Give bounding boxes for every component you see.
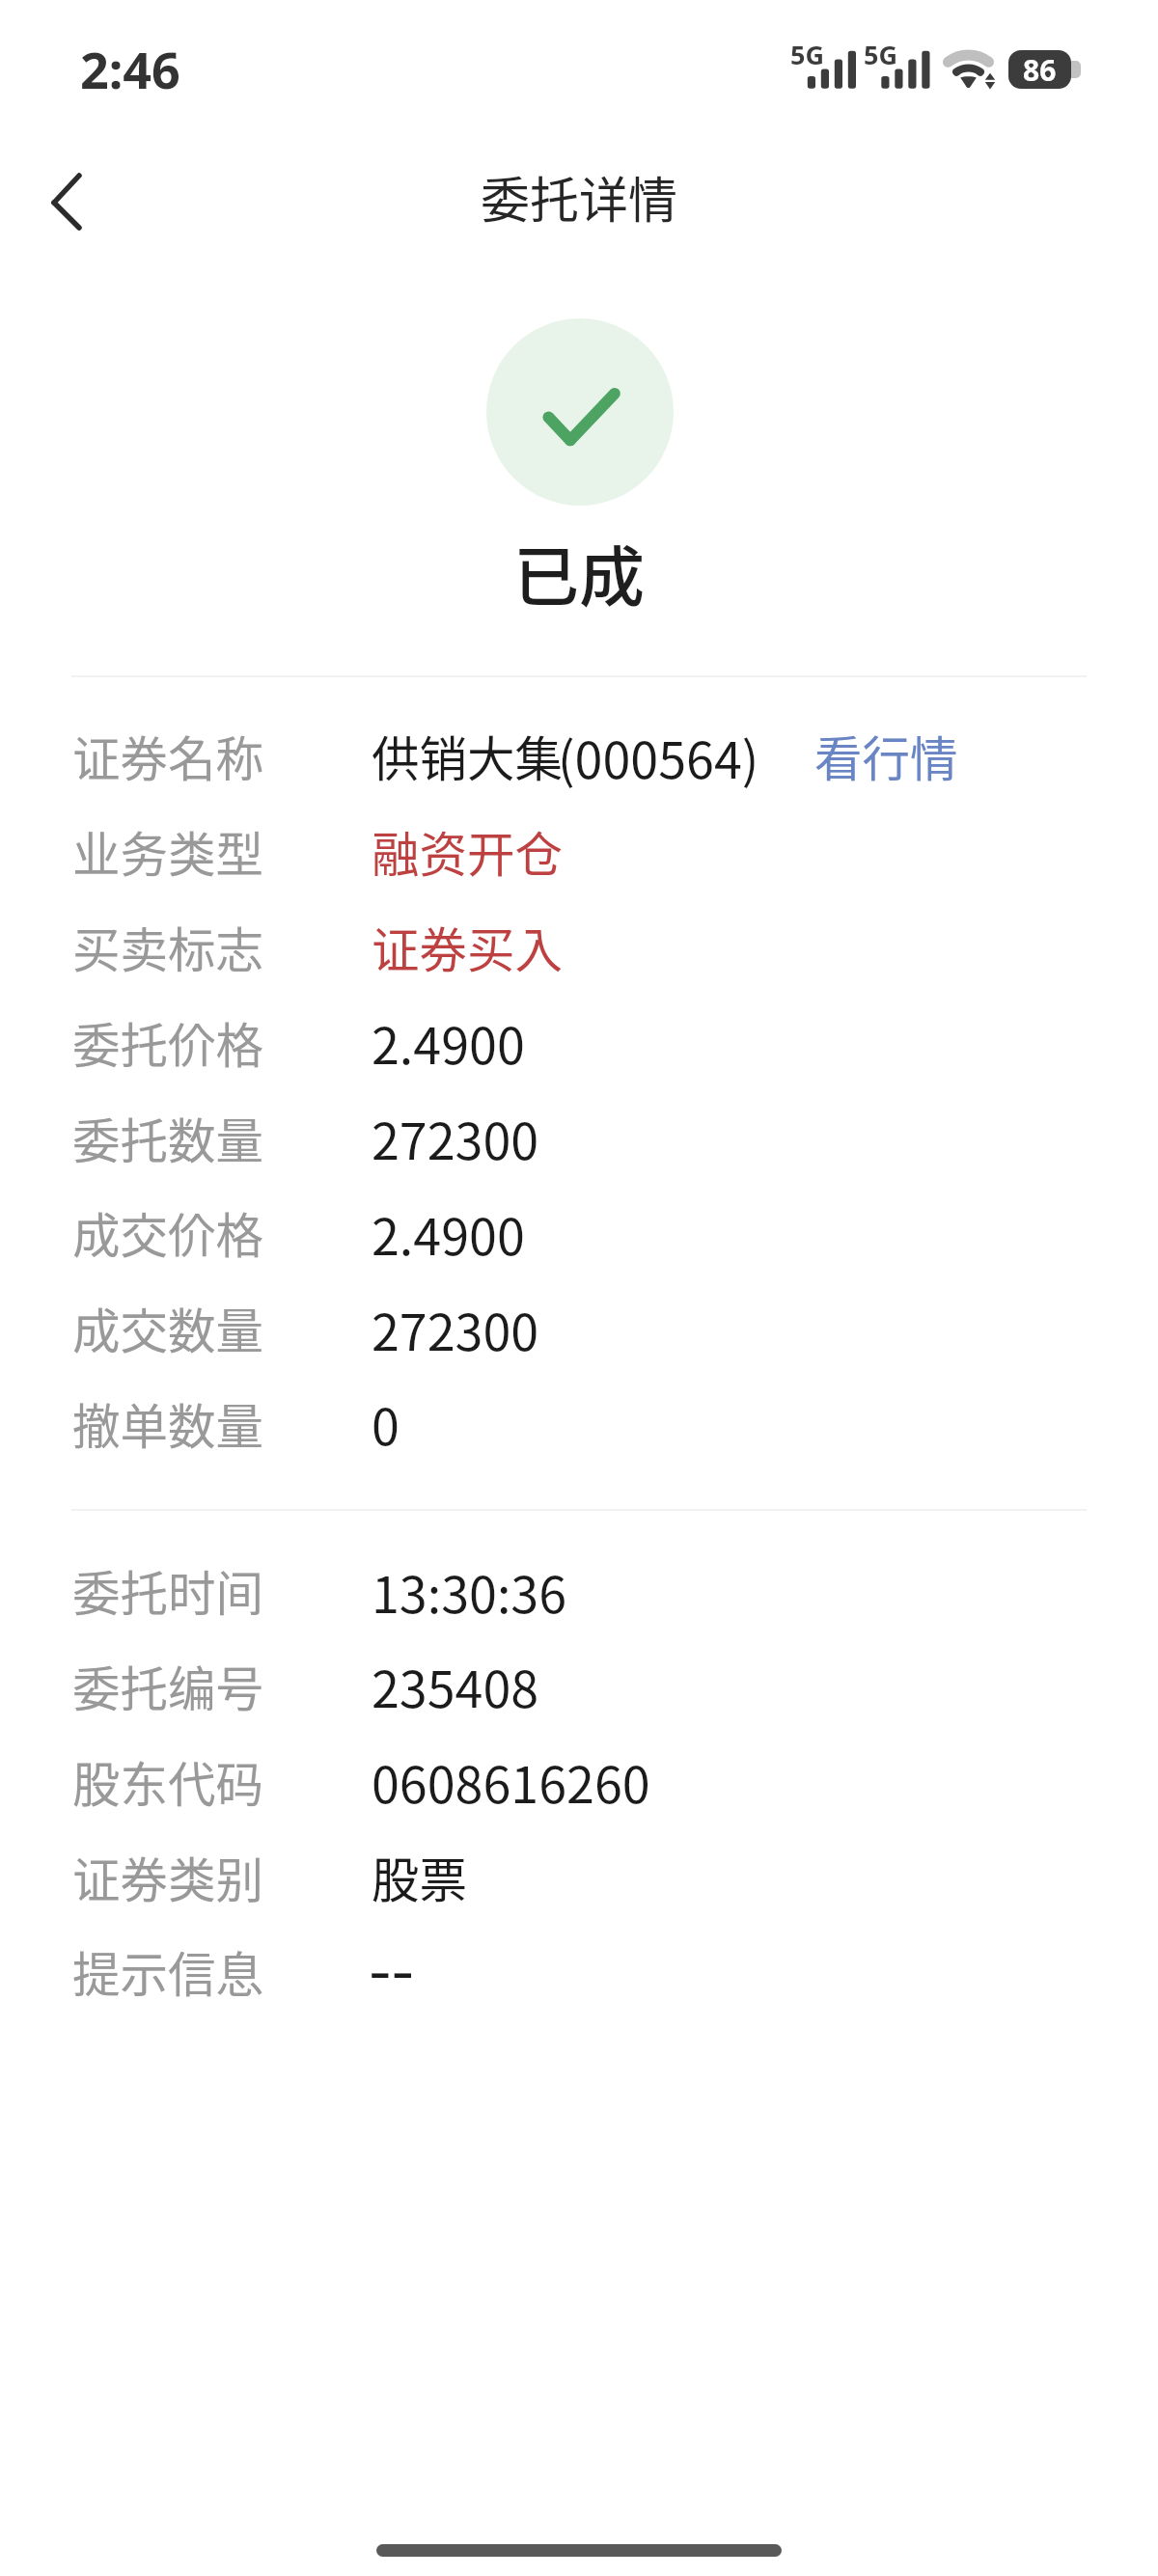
staticText: 13:30:36 xyxy=(372,1555,567,1628)
button[interactable] xyxy=(0,1093,1158,1188)
button[interactable] xyxy=(0,902,1158,997)
button[interactable] xyxy=(0,1737,1158,1831)
button[interactable] xyxy=(0,712,1158,807)
staticText: 委托价格 xyxy=(72,1008,263,1078)
staticText: 272300 xyxy=(372,1293,539,1365)
button[interactable] xyxy=(0,1928,1158,2022)
staticText: 272300 xyxy=(372,1102,539,1174)
staticText: 委托数量 xyxy=(72,1104,263,1173)
staticText: 已成 xyxy=(513,525,646,619)
staticText: 证券类别 xyxy=(72,1843,263,1912)
button[interactable] xyxy=(0,1189,1158,1283)
staticText: 业务类型 xyxy=(72,817,263,887)
staticText: (000564) xyxy=(558,721,759,793)
button[interactable] xyxy=(0,998,1158,1092)
staticText: 证券名称 xyxy=(72,722,263,791)
staticText: 成交数量 xyxy=(72,1294,263,1363)
staticText: 证券买入 xyxy=(372,913,563,982)
staticText: 235408 xyxy=(372,1650,539,1722)
button[interactable] xyxy=(0,1284,1158,1379)
staticText: 0608616260 xyxy=(372,1745,650,1818)
staticText: 撤单数量 xyxy=(72,1389,263,1459)
button[interactable]: 看行情 xyxy=(0,0,144,69)
staticText: 提示信息 xyxy=(72,1937,263,2007)
staticText: 委托编号 xyxy=(72,1652,263,1721)
staticText: -- xyxy=(369,1918,415,2013)
staticText: 供销大集 xyxy=(372,722,563,791)
staticText: 股东代码 xyxy=(72,1747,263,1817)
button[interactable] xyxy=(0,1641,1158,1736)
staticText: 成交价格 xyxy=(72,1198,263,1268)
staticText: 5G xyxy=(864,37,897,72)
button[interactable]: Back xyxy=(23,158,112,247)
staticText: 融资开仓 xyxy=(372,817,563,887)
staticText: 委托时间 xyxy=(72,1556,263,1626)
staticText: 5G xyxy=(790,37,824,72)
staticText: 委托详情 xyxy=(481,161,678,233)
staticText: 2:46 xyxy=(80,35,180,103)
staticText: 股票 xyxy=(372,1843,467,1912)
staticText: 2.4900 xyxy=(372,1006,525,1079)
button[interactable] xyxy=(0,808,1158,902)
button[interactable] xyxy=(0,1547,1158,1641)
staticText: 0 xyxy=(372,1387,400,1460)
staticText: 2.4900 xyxy=(372,1197,525,1270)
button[interactable] xyxy=(0,1379,1158,1473)
staticText: 86 xyxy=(1023,50,1057,89)
staticText: 买卖标志 xyxy=(72,913,263,982)
button[interactable] xyxy=(0,1832,1158,1927)
